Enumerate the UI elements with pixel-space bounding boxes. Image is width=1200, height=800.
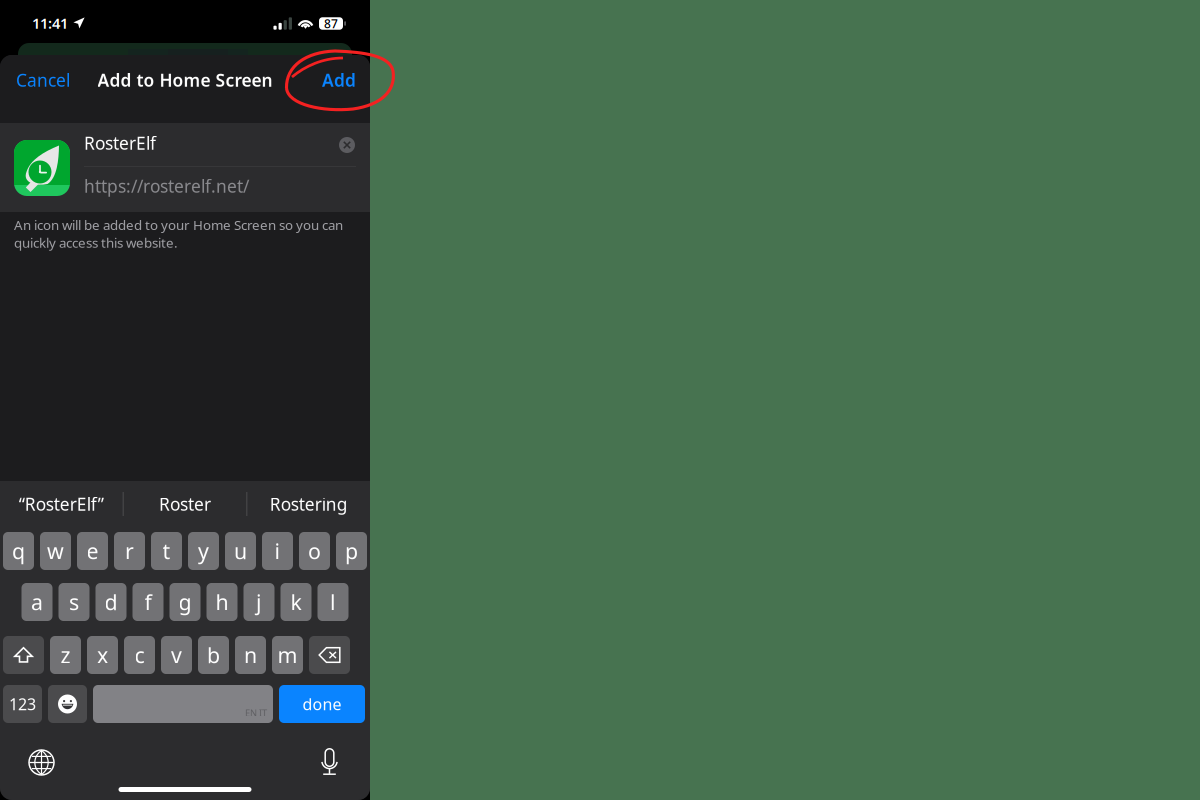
staticText: f <box>144 588 151 616</box>
staticText: g <box>178 588 191 616</box>
staticText: v <box>171 641 182 669</box>
button[interactable]: y <box>188 532 219 570</box>
button[interactable]: Roster <box>124 481 246 527</box>
staticText: y <box>198 537 209 565</box>
button[interactable]: Rostering <box>247 481 370 527</box>
staticText: i <box>274 537 280 565</box>
button[interactable]: RosterElf <box>84 123 370 166</box>
staticText: RosterElf <box>84 131 156 154</box>
button[interactable]: i <box>262 532 293 570</box>
staticText: k <box>290 588 301 616</box>
button[interactable]: Next keyboard <box>29 750 54 775</box>
staticText: Roster <box>159 492 211 515</box>
button[interactable]: Add <box>306 58 356 102</box>
button[interactable]: h <box>206 583 237 621</box>
staticText: https://rosterelf.net/ <box>84 174 249 197</box>
staticText: Cancel <box>16 68 70 91</box>
button[interactable]: p <box>336 532 367 570</box>
button[interactable]: m <box>272 636 303 674</box>
button[interactable]: t <box>151 532 182 570</box>
staticText: z <box>60 641 70 669</box>
staticText: n <box>244 641 257 669</box>
button[interactable]: Delete <box>309 636 350 674</box>
staticText: 11:41 <box>32 13 68 33</box>
staticText: b <box>207 641 220 669</box>
button[interactable]: “RosterElf” <box>0 481 123 527</box>
button[interactable]: o <box>299 532 330 570</box>
staticText: d <box>104 588 117 616</box>
button[interactable]: w <box>40 532 71 570</box>
button[interactable]: Emoji <box>48 685 87 723</box>
staticText: EN IT <box>245 707 267 719</box>
staticText: An icon will be added to your Home Scree… <box>14 216 343 251</box>
staticText: j <box>256 588 262 616</box>
staticText: e <box>86 537 98 565</box>
button[interactable]: q <box>3 532 34 570</box>
staticText: Rostering <box>270 492 348 515</box>
staticText: p <box>345 537 358 565</box>
staticText: t <box>162 537 170 565</box>
button[interactable]: Numbers <box>3 685 42 723</box>
staticText: h <box>215 588 228 616</box>
button[interactable]: u <box>225 532 256 570</box>
button[interactable]: r <box>114 532 145 570</box>
button[interactable]: d <box>95 583 126 621</box>
button[interactable]: Done <box>279 685 365 723</box>
button[interactable]: Shift <box>3 636 44 674</box>
staticText: 123 <box>9 693 36 715</box>
staticText: q <box>12 537 25 565</box>
button[interactable]: z <box>50 636 81 674</box>
staticText: m <box>277 641 297 669</box>
button[interactable]: s <box>58 583 89 621</box>
staticText: o <box>308 537 321 565</box>
button[interactable]: v <box>161 636 192 674</box>
staticText: u <box>234 537 247 565</box>
staticText: x <box>97 641 108 669</box>
staticText: s <box>69 588 79 616</box>
button[interactable]: n <box>235 636 266 674</box>
staticText: w <box>47 537 64 565</box>
staticText: a <box>31 588 43 616</box>
button[interactable]: a <box>21 583 52 621</box>
staticText: r <box>125 537 134 565</box>
button[interactable]: l <box>317 583 348 621</box>
staticText: Add to Home Screen <box>97 68 272 91</box>
button[interactable]: k <box>280 583 311 621</box>
staticText: done <box>302 693 341 715</box>
staticText: l <box>330 588 336 616</box>
button[interactable]: Space <box>93 685 273 723</box>
button[interactable]: e <box>77 532 108 570</box>
staticText: 87 <box>324 15 338 31</box>
button[interactable]: https://rosterelf.net/ <box>84 166 370 212</box>
button[interactable]: j <box>243 583 274 621</box>
staticText: “RosterElf” <box>19 492 104 515</box>
staticText: Add <box>322 68 356 91</box>
button[interactable]: Cancel <box>16 58 78 102</box>
button[interactable]: b <box>198 636 229 674</box>
button[interactable]: x <box>87 636 118 674</box>
button[interactable]: g <box>169 583 200 621</box>
button[interactable]: f <box>132 583 163 621</box>
button[interactable]: Dictate <box>320 748 339 777</box>
button[interactable]: c <box>124 636 155 674</box>
staticText: c <box>134 641 144 669</box>
